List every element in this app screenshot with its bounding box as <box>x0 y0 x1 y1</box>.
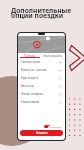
staticText: Трезвый <box>51 125 62 128</box>
staticText: Дополнительные опции поездки <box>11 6 72 20</box>
button[interactable]: Можно ли с детьми <box>18 66 65 74</box>
button[interactable]: Номер телефона <box>18 90 65 98</box>
button[interactable]: Сколько часов <box>18 58 65 66</box>
staticText: Можно ли с детьми <box>21 68 47 72</box>
staticText: Поездка <box>24 54 35 58</box>
button[interactable]: Поездка <box>18 53 41 58</box>
button[interactable]: Комментарий <box>18 98 65 106</box>
button[interactable]: Заказ машины <box>41 53 65 58</box>
staticText: Ваше имя <box>21 84 35 88</box>
button[interactable]: Куда поедете <box>18 74 65 82</box>
staticText: Комментарий <box>21 100 40 104</box>
staticText: Сколько часов <box>21 60 40 64</box>
staticText: Заказ машины <box>43 54 63 58</box>
staticText: Заказать <box>36 131 48 135</box>
button[interactable]: Ваше имя <box>18 82 65 90</box>
staticText: Куда поедете <box>21 76 39 80</box>
button[interactable]: Заказать <box>20 130 63 136</box>
button[interactable]: Трезвый <box>18 122 65 130</box>
staticText: Номер телефона <box>21 92 43 96</box>
